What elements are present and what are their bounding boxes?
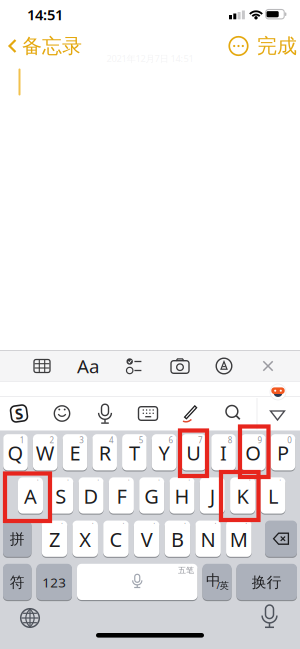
button[interactable]: Emoji [49, 398, 75, 428]
button[interactable]: Fancy text [177, 398, 203, 428]
staticText: O [245, 439, 261, 466]
button[interactable]: N [195, 521, 221, 558]
staticText: P [277, 439, 289, 466]
staticText: 4 [109, 435, 114, 445]
staticText: ˙ [158, 478, 159, 489]
button[interactable]: Markup [207, 350, 241, 381]
button[interactable]: W [33, 434, 57, 472]
button[interactable]: Format [71, 350, 105, 381]
staticText: 完成 [257, 34, 297, 58]
staticText: Y [159, 439, 170, 466]
button[interactable]: Voice input [92, 398, 118, 428]
staticText: 14:51 [27, 5, 63, 24]
staticText: W [36, 439, 55, 466]
button[interactable]: Dictation [254, 602, 284, 632]
staticText: ˙ [246, 521, 247, 532]
button[interactable]: Checklist [117, 350, 151, 381]
staticText: G [144, 483, 159, 509]
staticText: ˙ [153, 521, 154, 532]
button[interactable]: S [48, 477, 73, 515]
button[interactable]: D [79, 477, 104, 515]
staticText: ˙ [279, 478, 280, 489]
staticText: S [55, 483, 66, 509]
staticText: 7 [198, 435, 203, 445]
button[interactable]: Chinese/English [202, 564, 231, 602]
button[interactable]: Hide keyboard [263, 400, 291, 430]
button[interactable]: B [165, 521, 190, 558]
staticText: X [79, 526, 91, 552]
button[interactable]: Next keyboard [15, 603, 45, 633]
staticText: 备忘录 [22, 34, 82, 58]
staticText: N [201, 526, 216, 552]
button[interactable]: X [72, 521, 98, 558]
staticText: 符 [10, 573, 25, 591]
staticText: 6 [168, 435, 173, 445]
staticText: 五笔 [178, 565, 194, 575]
button[interactable]: P [271, 434, 295, 472]
button[interactable]: J [200, 477, 225, 515]
staticText: A [24, 483, 37, 509]
button[interactable]: T [122, 434, 147, 472]
staticText: ˙ [215, 521, 216, 532]
button[interactable]: C [103, 521, 129, 558]
button[interactable]: E [63, 434, 87, 472]
button[interactable]: 备忘录 [8, 31, 82, 61]
staticText: V [141, 526, 153, 552]
staticText: S [15, 404, 23, 423]
staticText: 中 [206, 571, 221, 589]
button[interactable]: 换行 [236, 564, 297, 602]
staticText: I [220, 439, 227, 466]
button[interactable]: Y [152, 434, 176, 472]
button[interactable]: Search [220, 398, 246, 428]
staticText: ˙ [123, 521, 124, 532]
button[interactable]: K [230, 477, 255, 515]
staticText: H [174, 483, 189, 509]
button[interactable]: Keyboard layout [135, 398, 161, 428]
staticText: 拼 [10, 530, 25, 548]
staticText: ˙ [61, 521, 62, 532]
staticText: Z [49, 526, 60, 552]
staticText: B [171, 526, 184, 552]
button[interactable]: M [226, 521, 252, 558]
button[interactable]: R [92, 434, 117, 472]
button[interactable]: Sogou [6, 398, 32, 428]
staticText: /英 [216, 579, 228, 591]
button[interactable]: Z [42, 521, 67, 558]
button[interactable]: A [18, 477, 43, 515]
staticText: 5 [139, 435, 144, 445]
staticText: ˙ [98, 478, 99, 489]
staticText: ˙ [249, 478, 250, 489]
staticText: Aa [77, 354, 99, 378]
staticText: 0 [287, 435, 292, 445]
staticText: 123 [42, 573, 66, 591]
staticText: 9 [258, 435, 263, 445]
button[interactable]: O [241, 434, 266, 472]
button[interactable]: Delete [265, 521, 297, 558]
staticText: ˙ [37, 478, 38, 489]
button[interactable]: Space [77, 564, 197, 602]
button[interactable]: 完成 [255, 31, 299, 61]
staticText: L [268, 483, 278, 509]
button[interactable]: G [139, 477, 164, 515]
button[interactable]: Dismiss toolbar [251, 350, 285, 381]
button[interactable]: I [211, 434, 236, 472]
staticText: ˙ [128, 478, 129, 489]
button[interactable]: 符 [3, 564, 31, 602]
button[interactable]: V [134, 521, 159, 558]
staticText: 8 [228, 435, 233, 445]
button[interactable]: 拼 [3, 521, 31, 558]
button[interactable]: Insert table [25, 350, 59, 381]
button[interactable]: Camera [163, 350, 197, 381]
button[interactable]: H [169, 477, 194, 515]
button[interactable]: L [260, 477, 285, 515]
staticText: D [84, 483, 99, 509]
button[interactable]: 123 [36, 564, 72, 602]
staticText: ˙ [92, 521, 93, 532]
button[interactable]: More [227, 34, 250, 57]
button[interactable]: Q [3, 434, 28, 472]
staticText: 2021年12月7日 14:51 [106, 52, 193, 65]
staticText: ˙ [188, 478, 189, 489]
button[interactable]: U [181, 434, 206, 472]
button[interactable]: F [109, 477, 134, 515]
